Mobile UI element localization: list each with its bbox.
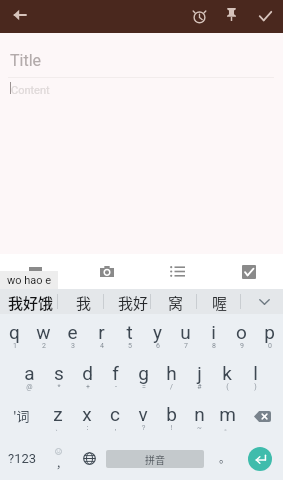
staticText: k xyxy=(222,362,232,384)
staticText: ) xyxy=(254,383,257,391)
staticText: wo hao e xyxy=(7,274,52,287)
button[interactable]: Checklist xyxy=(234,257,263,286)
staticText: 1 xyxy=(13,342,17,350)
staticText: ~ xyxy=(197,424,202,432)
button[interactable]: c xyxy=(101,396,129,437)
staticText: 8 xyxy=(212,342,216,350)
staticText: '词 xyxy=(13,406,30,425)
button[interactable]: n xyxy=(185,396,213,437)
staticText: Title xyxy=(10,51,42,70)
staticText: t xyxy=(126,321,133,343)
button[interactable]: r xyxy=(87,314,115,355)
staticText: 喔 xyxy=(212,292,228,314)
button[interactable]: Enter xyxy=(248,447,272,471)
staticText: q xyxy=(9,321,20,343)
button[interactable]: Insert image xyxy=(21,256,50,285)
staticText: s xyxy=(54,362,64,384)
staticText: ？ xyxy=(140,423,147,432)
staticText: p xyxy=(264,321,275,343)
button[interactable]: e xyxy=(58,314,87,355)
staticText: 7 xyxy=(184,342,188,350)
staticText: # xyxy=(197,383,202,391)
staticText: 拼音 xyxy=(145,452,165,466)
button[interactable]: Reminder xyxy=(185,1,214,30)
button[interactable]: t xyxy=(115,314,143,355)
button[interactable]: x xyxy=(72,396,101,437)
button[interactable]: wo hao e xyxy=(0,271,58,289)
staticText: ?123 xyxy=(8,451,37,466)
staticText: 3 xyxy=(71,342,75,350)
staticText: i xyxy=(211,321,216,343)
staticText: y xyxy=(153,321,162,343)
button[interactable]: Bulleted list xyxy=(163,257,192,286)
button[interactable]: q xyxy=(0,314,29,355)
staticText: a xyxy=(24,362,35,384)
staticText: g xyxy=(138,362,149,384)
staticText: j xyxy=(197,362,202,384)
button[interactable]: '词 xyxy=(0,396,43,437)
staticText: 6 xyxy=(156,342,160,350)
button[interactable]: Save xyxy=(251,1,280,30)
staticText: 9 xyxy=(240,342,244,350)
staticText: 0 xyxy=(268,342,272,350)
button[interactable]: h xyxy=(157,355,185,396)
button[interactable]: f xyxy=(101,355,129,396)
staticText: Content xyxy=(11,84,50,97)
button[interactable]: a xyxy=(15,355,44,396)
staticText: e xyxy=(67,321,78,343)
button[interactable]: 窝 xyxy=(160,290,192,315)
button[interactable]: y xyxy=(143,314,171,355)
staticText: ！ xyxy=(168,423,175,432)
button[interactable]: 。 xyxy=(204,437,236,480)
button[interactable]: p xyxy=(255,314,283,355)
button[interactable]: v xyxy=(129,396,157,437)
button[interactable]: u xyxy=(171,314,199,355)
button[interactable]: Back xyxy=(5,0,34,29)
staticText: ， xyxy=(56,455,67,471)
staticText: d xyxy=(82,362,93,384)
button[interactable]: ， xyxy=(44,437,72,480)
button[interactable]: i xyxy=(199,314,227,355)
staticText: n xyxy=(194,403,205,425)
button[interactable]: Backspace xyxy=(241,396,283,437)
staticText: 我好 xyxy=(118,292,149,314)
button[interactable]: j xyxy=(185,355,213,396)
staticText: / xyxy=(170,383,173,391)
staticText: ( xyxy=(226,383,229,391)
staticText: 5 xyxy=(128,342,132,350)
staticText: 、 xyxy=(55,423,62,432)
staticText: + xyxy=(86,383,90,391)
staticText: x xyxy=(82,403,92,425)
button[interactable]: k xyxy=(213,355,241,396)
button[interactable]: o xyxy=(227,314,255,355)
staticText: b xyxy=(166,403,177,425)
button[interactable]: Change keyboard language xyxy=(72,437,106,480)
button[interactable]: 我好饿 xyxy=(0,290,62,315)
staticText: 。 xyxy=(219,450,230,466)
staticText: w xyxy=(36,321,51,343)
staticText: - xyxy=(115,383,117,391)
button[interactable]: Take photo xyxy=(92,257,121,286)
staticText: u xyxy=(180,321,191,343)
button[interactable]: Pin note xyxy=(217,0,246,29)
staticText: 2 xyxy=(42,342,46,350)
button[interactable]: g xyxy=(129,355,157,396)
button[interactable]: ?123 xyxy=(0,437,44,480)
button[interactable]: l xyxy=(241,355,269,396)
staticText: h xyxy=(166,362,177,384)
button[interactable]: b xyxy=(157,396,185,437)
button[interactable]: More candidates xyxy=(246,289,283,314)
button[interactable]: 我 xyxy=(68,290,100,315)
button[interactable]: 拼音 xyxy=(106,450,204,468)
staticText: z xyxy=(53,403,63,425)
button[interactable]: m xyxy=(213,396,241,437)
button[interactable]: s xyxy=(44,355,73,396)
button[interactable]: d xyxy=(73,355,101,396)
button[interactable]: 喔 xyxy=(204,290,236,315)
staticText: = xyxy=(142,383,146,391)
button[interactable]: z xyxy=(43,396,72,437)
button[interactable]: w xyxy=(29,314,58,355)
button[interactable]: 我好 xyxy=(110,290,157,315)
staticText: ： xyxy=(84,423,91,432)
staticText: 4 xyxy=(100,342,104,350)
